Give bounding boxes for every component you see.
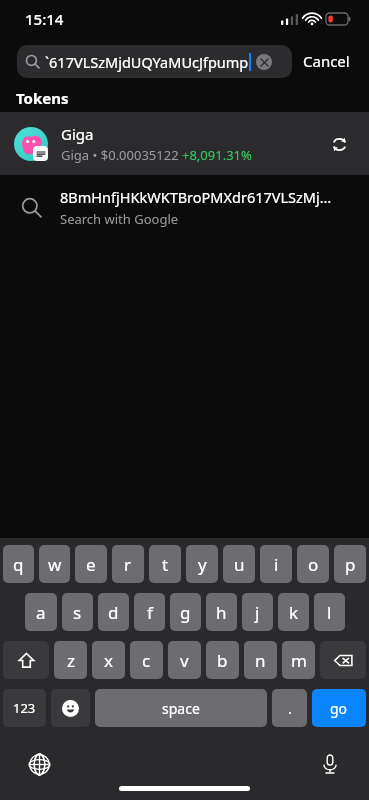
staticText: g [180, 601, 191, 624]
button[interactable]: m [282, 641, 315, 679]
staticText: 15:14 [25, 9, 64, 29]
staticText: r [124, 553, 132, 576]
button[interactable]: a [25, 593, 57, 631]
staticText: v [180, 649, 189, 672]
button[interactable]: Backspace [320, 641, 366, 679]
staticText: Search with Google [60, 210, 179, 228]
button[interactable]: . [272, 689, 307, 727]
staticText: y [198, 553, 207, 576]
staticText: j [255, 601, 260, 624]
staticText: Tokens [16, 88, 69, 108]
button[interactable]: go [312, 689, 366, 727]
staticText: m [291, 649, 307, 672]
button[interactable]: o [297, 545, 329, 583]
staticText: `617VLSzMjdUQYaMUcJfpump [45, 52, 249, 72]
button[interactable]: b [206, 641, 239, 679]
button[interactable]: s [62, 593, 93, 631]
button[interactable]: c [130, 641, 163, 679]
staticText: 123 [13, 699, 36, 717]
button[interactable]: k [278, 593, 309, 631]
button[interactable]: Giga [0, 112, 369, 175]
button[interactable]: j [242, 593, 273, 631]
button[interactable]: Shift [3, 641, 49, 679]
staticText: space [162, 699, 200, 718]
button[interactable]: 8BmHnfjHKkWKTBroPMXdr617VLSzMj… [0, 175, 369, 239]
button[interactable]: l [314, 593, 345, 631]
button[interactable]: Emoji [51, 689, 90, 727]
button[interactable]: t [149, 545, 181, 583]
staticText: Giga [61, 124, 94, 144]
staticText: go [330, 699, 348, 718]
button[interactable]: f [134, 593, 165, 631]
staticText: 8BmHnfjHKkWKTBroPMXdr617VLSzMj… [60, 187, 332, 207]
button[interactable]: d [98, 593, 129, 631]
button[interactable]: Clear text [256, 54, 272, 70]
staticText: f [147, 601, 153, 624]
staticText: k [289, 601, 299, 624]
button[interactable]: Search [17, 45, 292, 78]
button[interactable]: n [244, 641, 277, 679]
staticText: a [36, 601, 46, 624]
staticText: i [274, 553, 279, 576]
button[interactable]: Cancel [292, 45, 352, 77]
staticText: h [216, 601, 227, 624]
staticText: t [162, 553, 169, 576]
staticText: p [345, 553, 356, 576]
button[interactable]: Voice input [313, 747, 347, 781]
staticText: Cancel [303, 51, 350, 71]
staticText: e [86, 553, 96, 576]
staticText: n [255, 649, 266, 672]
staticText: . [288, 699, 292, 718]
button[interactable]: p [334, 545, 366, 583]
button[interactable]: w [39, 545, 70, 583]
button[interactable]: z [54, 641, 87, 679]
staticText: +8,091.31% [182, 146, 252, 164]
button[interactable]: Swap [323, 128, 355, 160]
button[interactable]: 123 [3, 689, 46, 727]
staticText: z [67, 649, 75, 672]
button[interactable]: x [92, 641, 125, 679]
staticText: d [108, 601, 119, 624]
other: Search [25, 54, 40, 69]
button[interactable]: r [112, 545, 144, 583]
staticText: c [142, 649, 151, 672]
button[interactable]: u [223, 545, 255, 583]
button[interactable]: i [260, 545, 292, 583]
staticText: o [308, 553, 319, 576]
button[interactable]: g [170, 593, 201, 631]
staticText: b [217, 649, 228, 672]
staticText: Giga • $0.00035122 [61, 146, 182, 164]
button[interactable]: q [3, 545, 34, 583]
staticText: q [13, 553, 24, 576]
button[interactable]: Change keyboard language [22, 747, 56, 781]
staticText: u [234, 553, 245, 576]
staticText: s [73, 601, 82, 624]
button[interactable]: v [168, 641, 201, 679]
button[interactable]: space [95, 689, 267, 727]
staticText: x [104, 649, 113, 672]
staticText: l [327, 601, 332, 624]
button[interactable]: y [186, 545, 218, 583]
button[interactable]: h [206, 593, 237, 631]
staticText: w [48, 553, 62, 576]
button[interactable]: e [75, 545, 107, 583]
